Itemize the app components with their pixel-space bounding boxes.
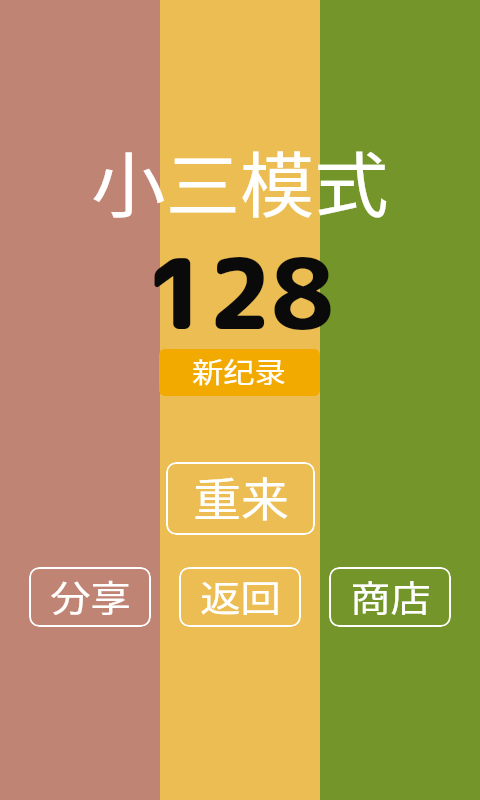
staticText: 返回 — [200, 570, 281, 622]
staticText: 商店 — [350, 570, 431, 622]
button[interactable]: 返回 — [179, 567, 301, 627]
button[interactable]: 重来 — [166, 462, 315, 535]
staticText: 128 — [145, 225, 335, 360]
button[interactable]: 新纪录 — [159, 349, 320, 396]
staticText: 重来 — [193, 463, 289, 530]
staticText: 小三模式 — [91, 129, 390, 232]
staticText: 新纪录 — [192, 351, 287, 392]
button[interactable]: 分享 — [29, 567, 151, 627]
button[interactable]: 商店 — [329, 567, 451, 627]
staticText: 分享 — [50, 570, 131, 622]
